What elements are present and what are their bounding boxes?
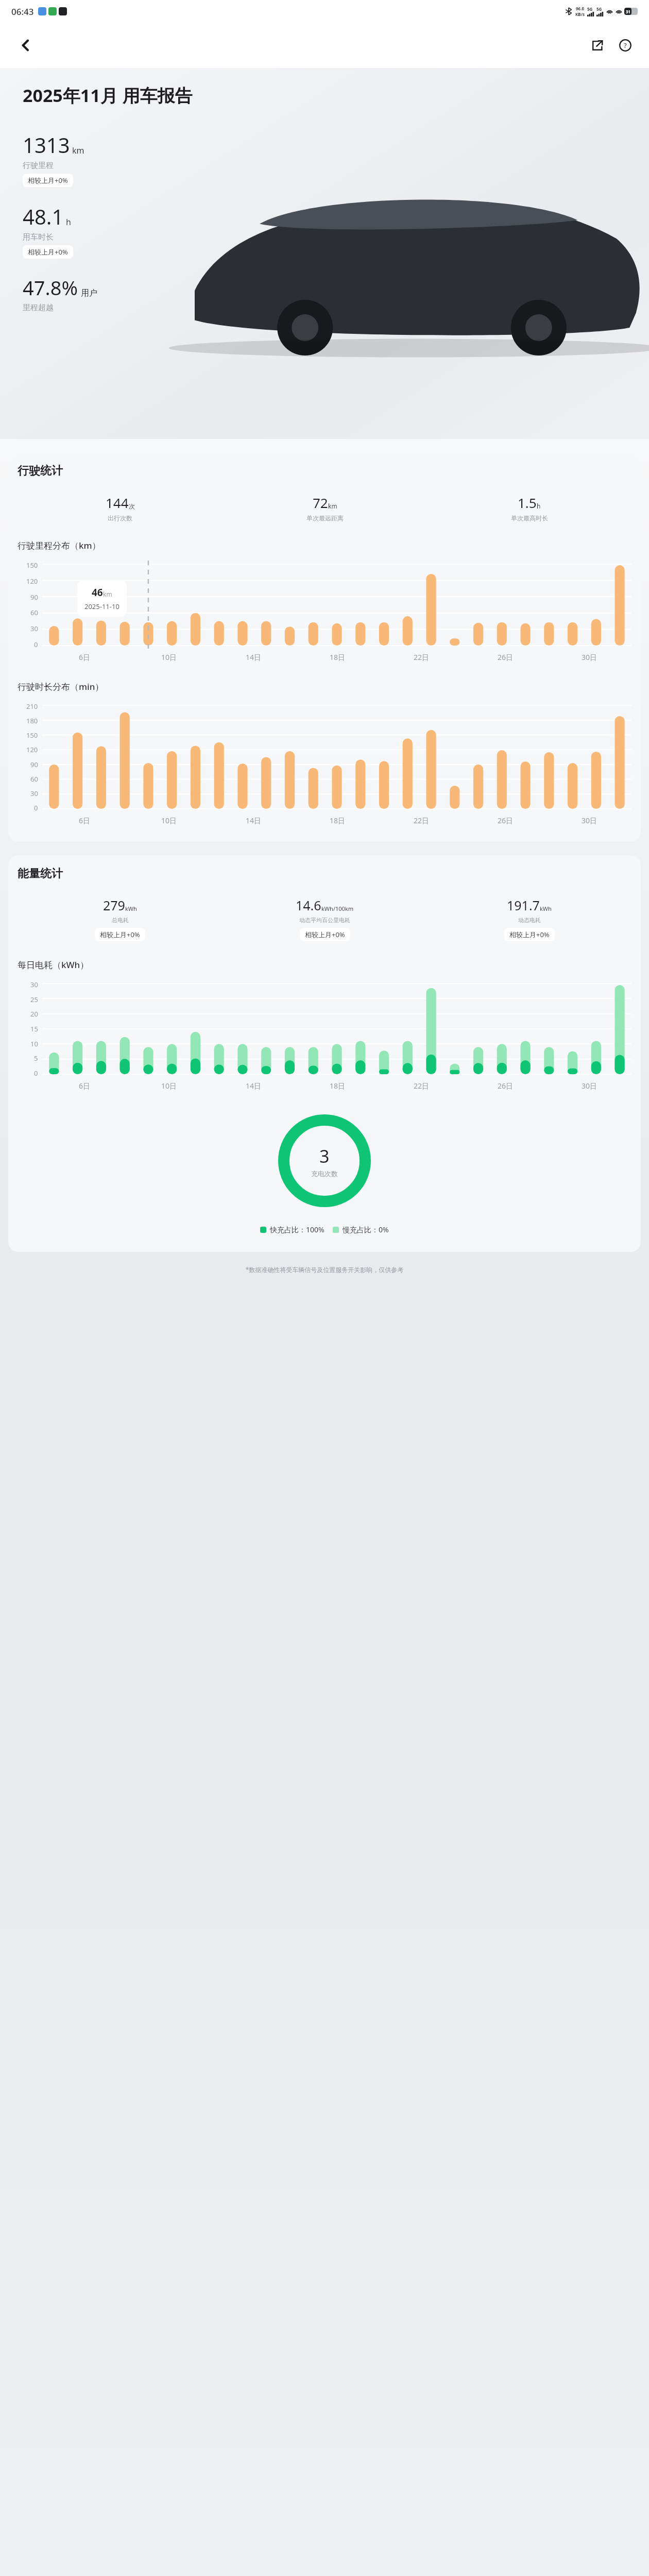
staticText: 0 (34, 1069, 38, 1078)
staticText: km (72, 145, 84, 156)
staticText: 150 (26, 561, 38, 570)
staticText: 3 (319, 1144, 330, 1168)
staticText: 行驶里程分布（km） (18, 539, 101, 551)
staticText: 行驶时长分布（min） (18, 681, 104, 692)
staticText: 行驶统计 (18, 464, 63, 478)
button[interactable]: 相较上月+0% (95, 928, 145, 941)
staticText: 0 (34, 640, 38, 649)
staticText: 30日 (582, 816, 597, 825)
staticText: 22日 (414, 652, 430, 662)
staticText: 6日 (79, 816, 91, 825)
staticText: 14日 (246, 1081, 262, 1091)
staticText: 25 (30, 995, 38, 1004)
staticText: 144 (106, 494, 129, 512)
staticText: 单次最远距离 (306, 514, 344, 522)
staticText: 150 (26, 731, 38, 740)
staticText: 22日 (414, 816, 430, 825)
staticText: 46 (92, 586, 103, 599)
staticText: 1313 (23, 131, 70, 159)
staticText: 120 (26, 577, 38, 586)
staticText: 总电耗 (112, 917, 129, 924)
staticText: 充电次数 (311, 1170, 338, 1178)
staticText: 动态平均百公里电耗 (299, 917, 350, 924)
staticText: 96.0 (576, 6, 584, 11)
staticText: 90 (30, 760, 38, 769)
staticText: 30 (30, 624, 38, 633)
staticText: 相较上月+0% (28, 247, 68, 257)
staticText: 每日电耗（kWh） (18, 959, 89, 971)
staticText: 6日 (79, 652, 91, 662)
staticText: 26日 (498, 652, 514, 662)
staticText: 0 (34, 803, 38, 812)
staticText: 用车时长 (23, 232, 54, 242)
staticText: 10日 (161, 1081, 177, 1091)
staticText: KB/s (575, 11, 585, 17)
staticText: 10 (30, 1039, 38, 1048)
staticText: 30 (30, 789, 38, 798)
button[interactable]: Help (613, 33, 638, 58)
staticText: km (103, 590, 112, 598)
staticText: 快充占比：100% (270, 1225, 324, 1234)
staticText: ? (624, 41, 627, 50)
staticText: 14日 (246, 652, 262, 662)
staticText: km (328, 502, 337, 510)
staticText: 相较上月+0% (305, 930, 345, 939)
staticText: 30日 (582, 652, 597, 662)
staticText: 行驶里程 (23, 161, 54, 171)
button[interactable]: 相较上月+0% (504, 928, 555, 941)
staticText: 18日 (330, 816, 346, 825)
staticText: h (537, 502, 541, 510)
staticText: 2025年11月 用车报告 (23, 83, 193, 107)
staticText: 90 (30, 592, 38, 602)
staticText: 120 (26, 745, 38, 754)
staticText: 相较上月+0% (28, 176, 68, 185)
staticText: 5G (587, 6, 593, 12)
staticText: 相较上月+0% (509, 930, 550, 939)
staticText: 单次最高时长 (511, 514, 548, 522)
staticText: 22日 (414, 1081, 430, 1091)
staticText: 6日 (79, 1081, 91, 1091)
button[interactable]: 相较上月+0% (23, 174, 73, 187)
staticText: 60 (30, 774, 38, 784)
staticText: 191.7 (507, 896, 540, 914)
staticText: kWh/100km (321, 905, 354, 912)
staticText: 10日 (161, 816, 177, 825)
staticText: 5G (596, 6, 602, 12)
staticText: 31 (626, 9, 631, 14)
staticText: 动态电耗 (518, 917, 541, 924)
staticText: 18日 (330, 652, 346, 662)
staticText: 用户 (81, 288, 97, 298)
staticText: 06:43 (11, 6, 34, 18)
staticText: 60 (30, 608, 38, 617)
staticText: *数据准确性将受车辆信号及位置服务开关影响，仅供参考 (15, 1265, 634, 1274)
staticText: 15 (30, 1024, 38, 1033)
staticText: 30 (30, 980, 38, 989)
staticText: kWh (125, 905, 137, 912)
staticText: 72 (313, 494, 328, 512)
staticText: 210 (26, 702, 38, 711)
staticText: 5 (34, 1054, 38, 1063)
staticText: 26日 (498, 816, 514, 825)
staticText: h (66, 216, 71, 228)
staticText: kWh (540, 905, 552, 912)
staticText: 20 (30, 1009, 38, 1019)
staticText: 次 (129, 502, 135, 510)
staticText: 慢充占比：0% (343, 1225, 389, 1234)
staticText: 能量统计 (18, 867, 63, 881)
staticText: 出行次数 (108, 514, 132, 522)
button[interactable]: Share (585, 33, 610, 58)
staticText: 47.8% (23, 274, 78, 301)
button[interactable]: 相较上月+0% (300, 928, 350, 941)
staticText: 14.6 (296, 896, 321, 914)
button[interactable]: Back (13, 33, 38, 58)
staticText: 180 (26, 716, 38, 725)
staticText: 1.5 (518, 494, 537, 512)
staticText: 279 (103, 896, 125, 914)
staticText: 里程超越 (23, 303, 54, 313)
staticText: 30日 (582, 1081, 597, 1091)
staticText: 48.1 (23, 202, 64, 230)
staticText: 26日 (498, 1081, 514, 1091)
staticText: 相较上月+0% (100, 930, 140, 939)
staticText: 18日 (330, 1081, 346, 1091)
button[interactable]: 相较上月+0% (23, 245, 73, 259)
